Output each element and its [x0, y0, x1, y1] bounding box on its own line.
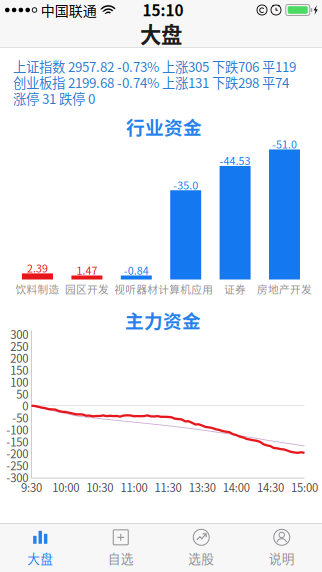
staticText: -250 — [6, 457, 28, 474]
staticText: 上证指数 2957.82 -0.73% 上涨305 下跌706 平119 — [13, 56, 296, 76]
staticText: 250 — [10, 338, 28, 354]
staticText: 0 — [22, 397, 28, 414]
staticText: -100 — [6, 421, 28, 438]
button[interactable]: 自选 — [80, 524, 161, 572]
staticText: 行业资金 — [126, 113, 202, 140]
staticText: -51.0 — [272, 136, 297, 152]
staticText: 说明 — [269, 549, 295, 567]
staticText: 视听器材 — [114, 281, 158, 296]
staticText: 15:00 — [291, 479, 318, 495]
staticText: 9:30 — [21, 479, 42, 495]
staticText: 1.47 — [76, 262, 97, 278]
button[interactable]: 选股 — [161, 524, 241, 572]
staticText: 11:00 — [120, 479, 147, 495]
staticText: 50 — [16, 385, 28, 402]
staticText: -150 — [6, 433, 28, 450]
staticText: 2.39 — [27, 260, 48, 276]
staticText: 房地产开发 — [257, 281, 312, 296]
staticText: 涨停 31 跌停 0 — [13, 88, 95, 108]
staticText: 创业板指 2199.68 -0.74% 上涨131 下跌298 平74 — [13, 72, 289, 92]
staticText: 自选 — [108, 549, 134, 567]
staticText: 15:10 — [142, 0, 183, 21]
staticText: -0.84 — [124, 262, 149, 278]
staticText: 证券 — [224, 281, 246, 296]
staticText: 园区开发 — [65, 281, 109, 296]
staticText: 100 — [10, 374, 28, 390]
staticText: -44.53 — [220, 153, 251, 168]
staticText: -35.0 — [173, 177, 198, 192]
staticText: 大盘 — [140, 18, 182, 49]
staticText: 中国联通 — [41, 0, 97, 20]
staticText: 11:30 — [154, 479, 181, 495]
staticText: 14:30 — [257, 479, 284, 495]
button[interactable]: 大盘 — [0, 524, 80, 572]
staticText: 饮料制造 — [15, 281, 59, 296]
staticText: 200 — [10, 350, 28, 366]
staticText: 150 — [10, 362, 28, 378]
staticText: 选股 — [188, 549, 214, 567]
staticText: -50 — [12, 409, 28, 426]
staticText: 13:30 — [189, 479, 216, 495]
staticText: -200 — [6, 445, 28, 462]
staticText: 大盘 — [27, 549, 53, 567]
staticText: 14:00 — [223, 479, 250, 495]
staticText: -300 — [6, 469, 28, 485]
button[interactable]: 说明 — [241, 524, 322, 572]
staticText: 300 — [10, 326, 28, 342]
staticText: 10:00 — [52, 479, 79, 495]
staticText: 10:30 — [86, 479, 113, 495]
staticText: 计算机应用 — [158, 281, 213, 296]
staticText: 主力资金 — [125, 306, 201, 333]
